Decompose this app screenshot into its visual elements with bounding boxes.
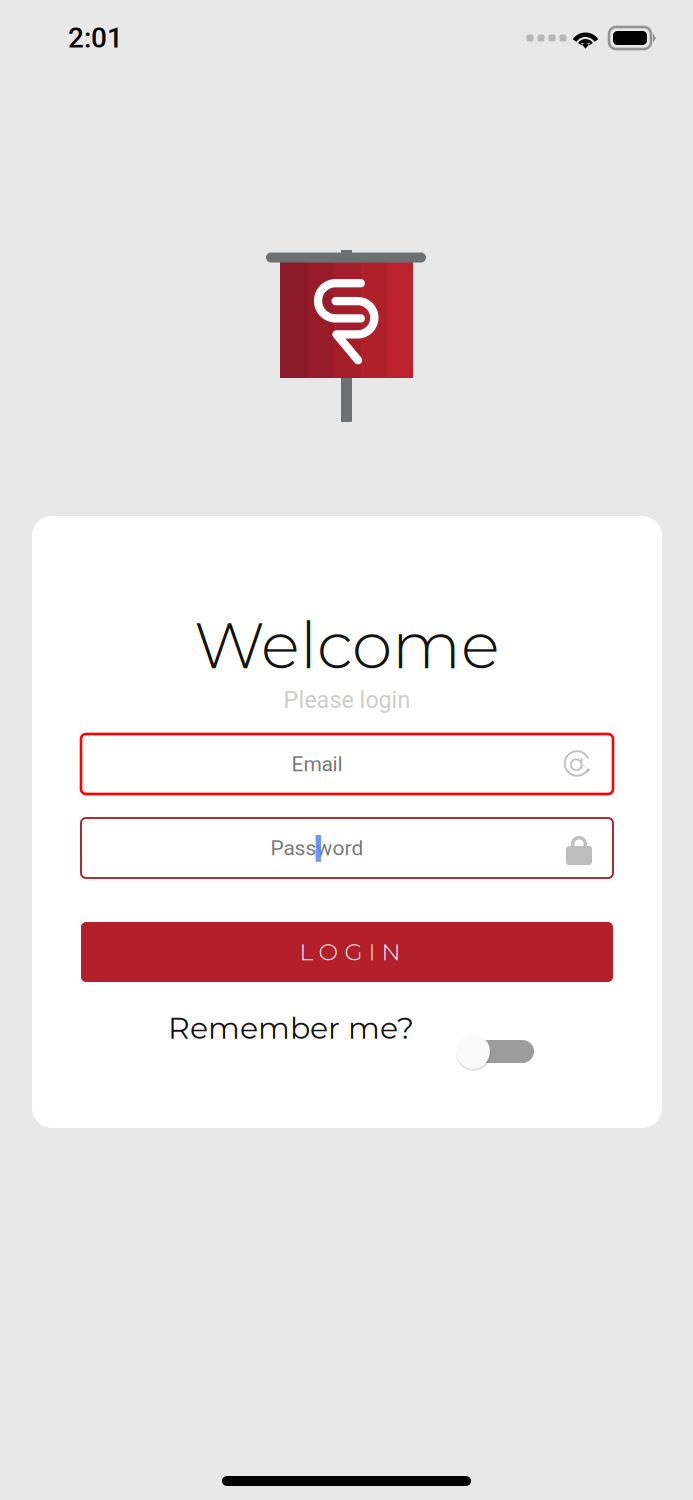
button[interactable]: Email (81, 734, 613, 794)
staticText: Email (291, 752, 342, 776)
staticText: 2:01 (68, 22, 123, 54)
staticText: Remember me? (168, 1010, 414, 1046)
staticText: Welcome (194, 606, 500, 684)
staticText: Please login (283, 686, 410, 714)
staticText: LOGIN (299, 938, 400, 966)
button[interactable]: LOGIN (81, 922, 613, 982)
staticText: Password (270, 836, 363, 860)
button[interactable]: Password (81, 818, 613, 878)
button[interactable]: Remember me (456, 1030, 534, 1072)
